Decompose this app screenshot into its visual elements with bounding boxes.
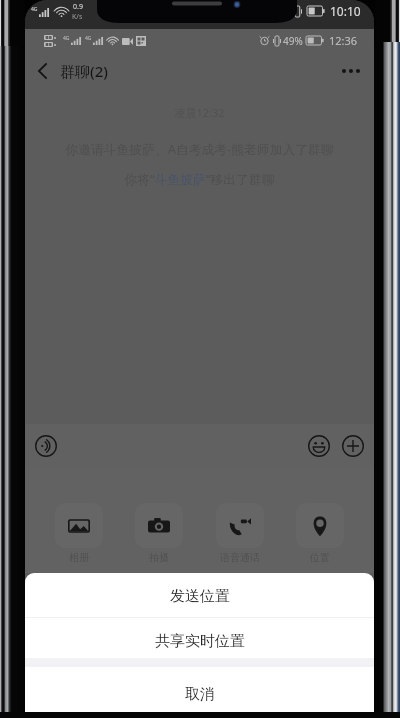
staticText: 12:36 <box>329 33 358 48</box>
staticText: 4G <box>31 6 38 13</box>
staticText: 4G <box>63 35 70 42</box>
staticText: 语音通话 <box>220 551 260 564</box>
staticText: 拍摄 <box>149 551 169 564</box>
button[interactable]: 发送位置 <box>25 573 374 617</box>
button[interactable]: More options <box>336 56 366 86</box>
staticText: 共享实时位置 <box>155 632 245 651</box>
staticText: 位置 <box>310 551 330 564</box>
staticText: 群聊(2) <box>60 61 108 81</box>
button[interactable]: 拍摄 <box>119 503 199 564</box>
button[interactable]: 共享实时位置 <box>25 618 374 658</box>
button[interactable]: Voice input <box>34 434 58 458</box>
staticText: 相册 <box>69 551 89 564</box>
staticText: 0.9 <box>73 2 83 12</box>
button[interactable]: Back <box>29 58 55 84</box>
staticText: 49% <box>283 34 303 48</box>
button[interactable]: 语音通话 <box>200 503 280 564</box>
button[interactable]: 取消 <box>25 667 374 712</box>
button[interactable]: More functions <box>341 434 365 458</box>
staticText: 你将“斗鱼披萨”移出了群聊 <box>25 170 374 187</box>
staticText: 你邀请斗鱼披萨、A自考成考-熊老师加入了群聊 <box>25 140 374 157</box>
staticText: 取消 <box>185 685 215 704</box>
button[interactable]: 位置 <box>280 503 360 564</box>
button[interactable]: 相册 <box>39 503 119 564</box>
staticText: K/s <box>72 12 83 22</box>
button[interactable]: Emoji <box>307 434 331 458</box>
staticText: 10:10 <box>330 3 361 19</box>
staticText: 发送位置 <box>170 587 230 606</box>
staticText: 4G <box>85 35 92 42</box>
